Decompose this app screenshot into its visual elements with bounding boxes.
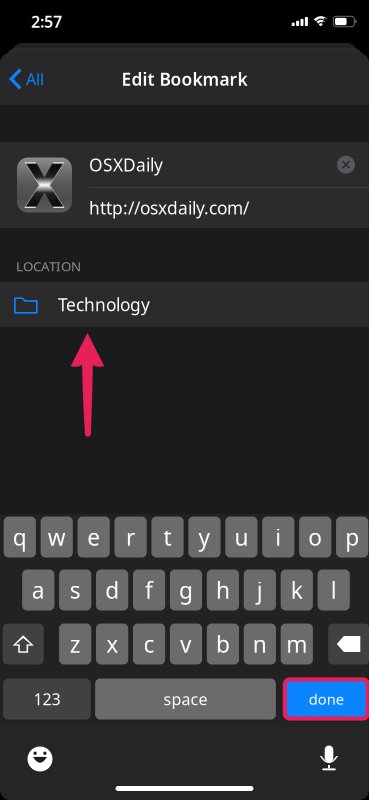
staticText: b: [216, 629, 230, 659]
button[interactable]: 123: [3, 678, 91, 719]
staticText: w: [48, 522, 66, 552]
button[interactable]: y: [188, 516, 221, 557]
staticText: s: [70, 575, 81, 605]
staticText: n: [253, 629, 267, 659]
staticText: k: [291, 575, 303, 605]
staticText: y: [198, 522, 210, 552]
staticText: z: [70, 629, 81, 659]
staticText: f: [145, 575, 153, 605]
button[interactable]: f: [133, 569, 165, 610]
staticText: x: [106, 629, 118, 659]
staticText: o: [308, 522, 322, 552]
button[interactable]: q: [4, 516, 36, 557]
button[interactable]: c: [133, 623, 165, 664]
staticText: m: [286, 629, 307, 659]
staticText: http://osxdaily.com/: [89, 196, 249, 219]
staticText: l: [331, 575, 337, 605]
button[interactable]: Emoji keyboard: [17, 736, 63, 782]
button[interactable]: k: [281, 569, 313, 610]
staticText: 2:57: [31, 11, 62, 32]
button[interactable]: r: [114, 516, 147, 557]
staticText: space: [163, 688, 207, 710]
staticText: done: [309, 689, 344, 709]
button[interactable]: u: [225, 516, 257, 557]
button[interactable]: w: [41, 516, 73, 557]
button[interactable]: t: [151, 516, 184, 557]
staticText: d: [105, 575, 119, 605]
staticText: r: [126, 522, 135, 552]
staticText: Technology: [58, 293, 150, 316]
button[interactable]: m: [281, 623, 313, 664]
button[interactable]: x: [96, 623, 128, 664]
staticText: 123: [33, 688, 60, 710]
button[interactable]: Delete: [328, 623, 369, 664]
staticText: a: [32, 575, 45, 605]
button[interactable]: Clear text: [337, 156, 355, 174]
button[interactable]: Technology: [0, 282, 369, 327]
staticText: p: [345, 522, 359, 552]
staticText: g: [179, 575, 193, 605]
staticText: i: [275, 522, 281, 552]
button[interactable]: p: [336, 516, 368, 557]
staticText: Edit Bookmark: [121, 67, 247, 90]
staticText: t: [163, 522, 171, 552]
button[interactable]: b: [207, 623, 239, 664]
button[interactable]: j: [244, 569, 276, 610]
staticText: All: [26, 68, 44, 90]
staticText: e: [87, 522, 100, 552]
button[interactable]: o: [299, 516, 331, 557]
button[interactable]: Dictation: [306, 736, 352, 782]
staticText: j: [257, 575, 263, 605]
button[interactable]: g: [170, 569, 202, 610]
staticText: LOCATION: [16, 257, 81, 275]
button[interactable]: All: [0, 54, 56, 104]
button[interactable]: i: [262, 516, 294, 557]
staticText: q: [13, 522, 27, 552]
staticText: OSXDaily: [89, 153, 163, 176]
button[interactable]: v: [170, 623, 202, 664]
button[interactable]: l: [318, 569, 350, 610]
button[interactable]: e: [78, 516, 110, 557]
staticText: c: [144, 629, 155, 659]
button[interactable]: s: [59, 569, 91, 610]
button[interactable]: done: [284, 678, 369, 719]
button[interactable]: d: [96, 569, 128, 610]
button[interactable]: n: [244, 623, 276, 664]
button[interactable]: h: [207, 569, 239, 610]
button[interactable]: space: [95, 678, 276, 719]
staticText: u: [234, 522, 248, 552]
button[interactable]: Shift: [3, 623, 44, 664]
staticText: v: [180, 629, 192, 659]
staticText: h: [216, 575, 230, 605]
button[interactable]: a: [22, 569, 54, 610]
button[interactable]: z: [59, 623, 91, 664]
